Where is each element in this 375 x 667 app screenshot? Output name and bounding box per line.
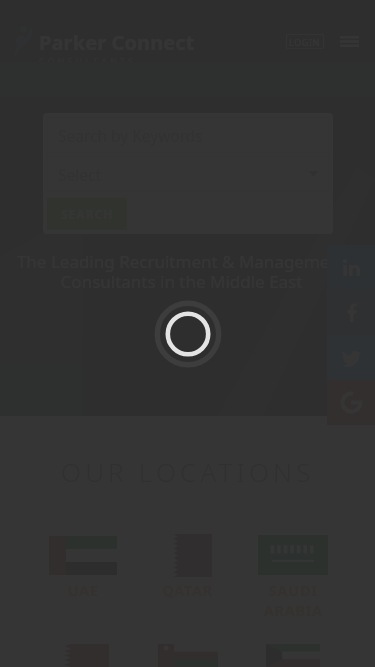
- button[interactable]: KUWAIT: [240, 644, 345, 667]
- button[interactable]: SAUDI ARABIA: [240, 533, 345, 620]
- button[interactable]: UAE: [30, 533, 135, 600]
- button[interactable]: BAHRAIN: [30, 644, 135, 667]
- button[interactable]: OMAN: [135, 644, 240, 667]
